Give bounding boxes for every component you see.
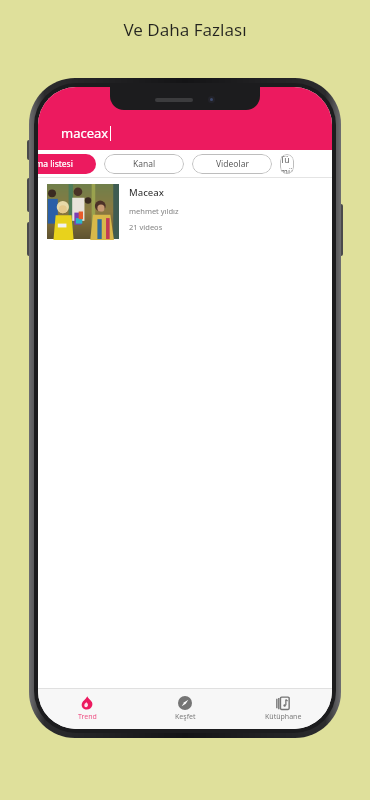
button[interactable]: Kütüphane xyxy=(234,689,332,729)
staticText: Çalma listesi xyxy=(38,158,73,170)
staticText: Keşfet xyxy=(175,712,196,722)
staticText: maceax xyxy=(61,124,109,142)
button[interactable]: Tümü xyxy=(280,154,294,174)
button[interactable]: Keşfet xyxy=(136,689,234,729)
staticText: Kanal xyxy=(133,158,156,170)
staticText: Trend xyxy=(78,712,97,722)
button[interactable]: Kanal xyxy=(104,154,184,174)
button[interactable]: Çalma listesi xyxy=(38,154,96,174)
button[interactable]: Videolar xyxy=(192,154,272,174)
staticText: 21 videos xyxy=(129,222,163,232)
staticText: Ve Daha Fazlası xyxy=(0,18,370,41)
button[interactable]: maceax xyxy=(61,120,332,146)
staticText: Kütüphane xyxy=(265,712,302,722)
button[interactable]: Trend xyxy=(38,689,136,729)
staticText: Videolar xyxy=(216,158,249,170)
staticText: Tümü xyxy=(280,154,294,174)
staticText: mehmet yıldız xyxy=(129,206,179,216)
button[interactable]: Maceax xyxy=(47,184,322,239)
staticText: Maceax xyxy=(129,186,164,199)
